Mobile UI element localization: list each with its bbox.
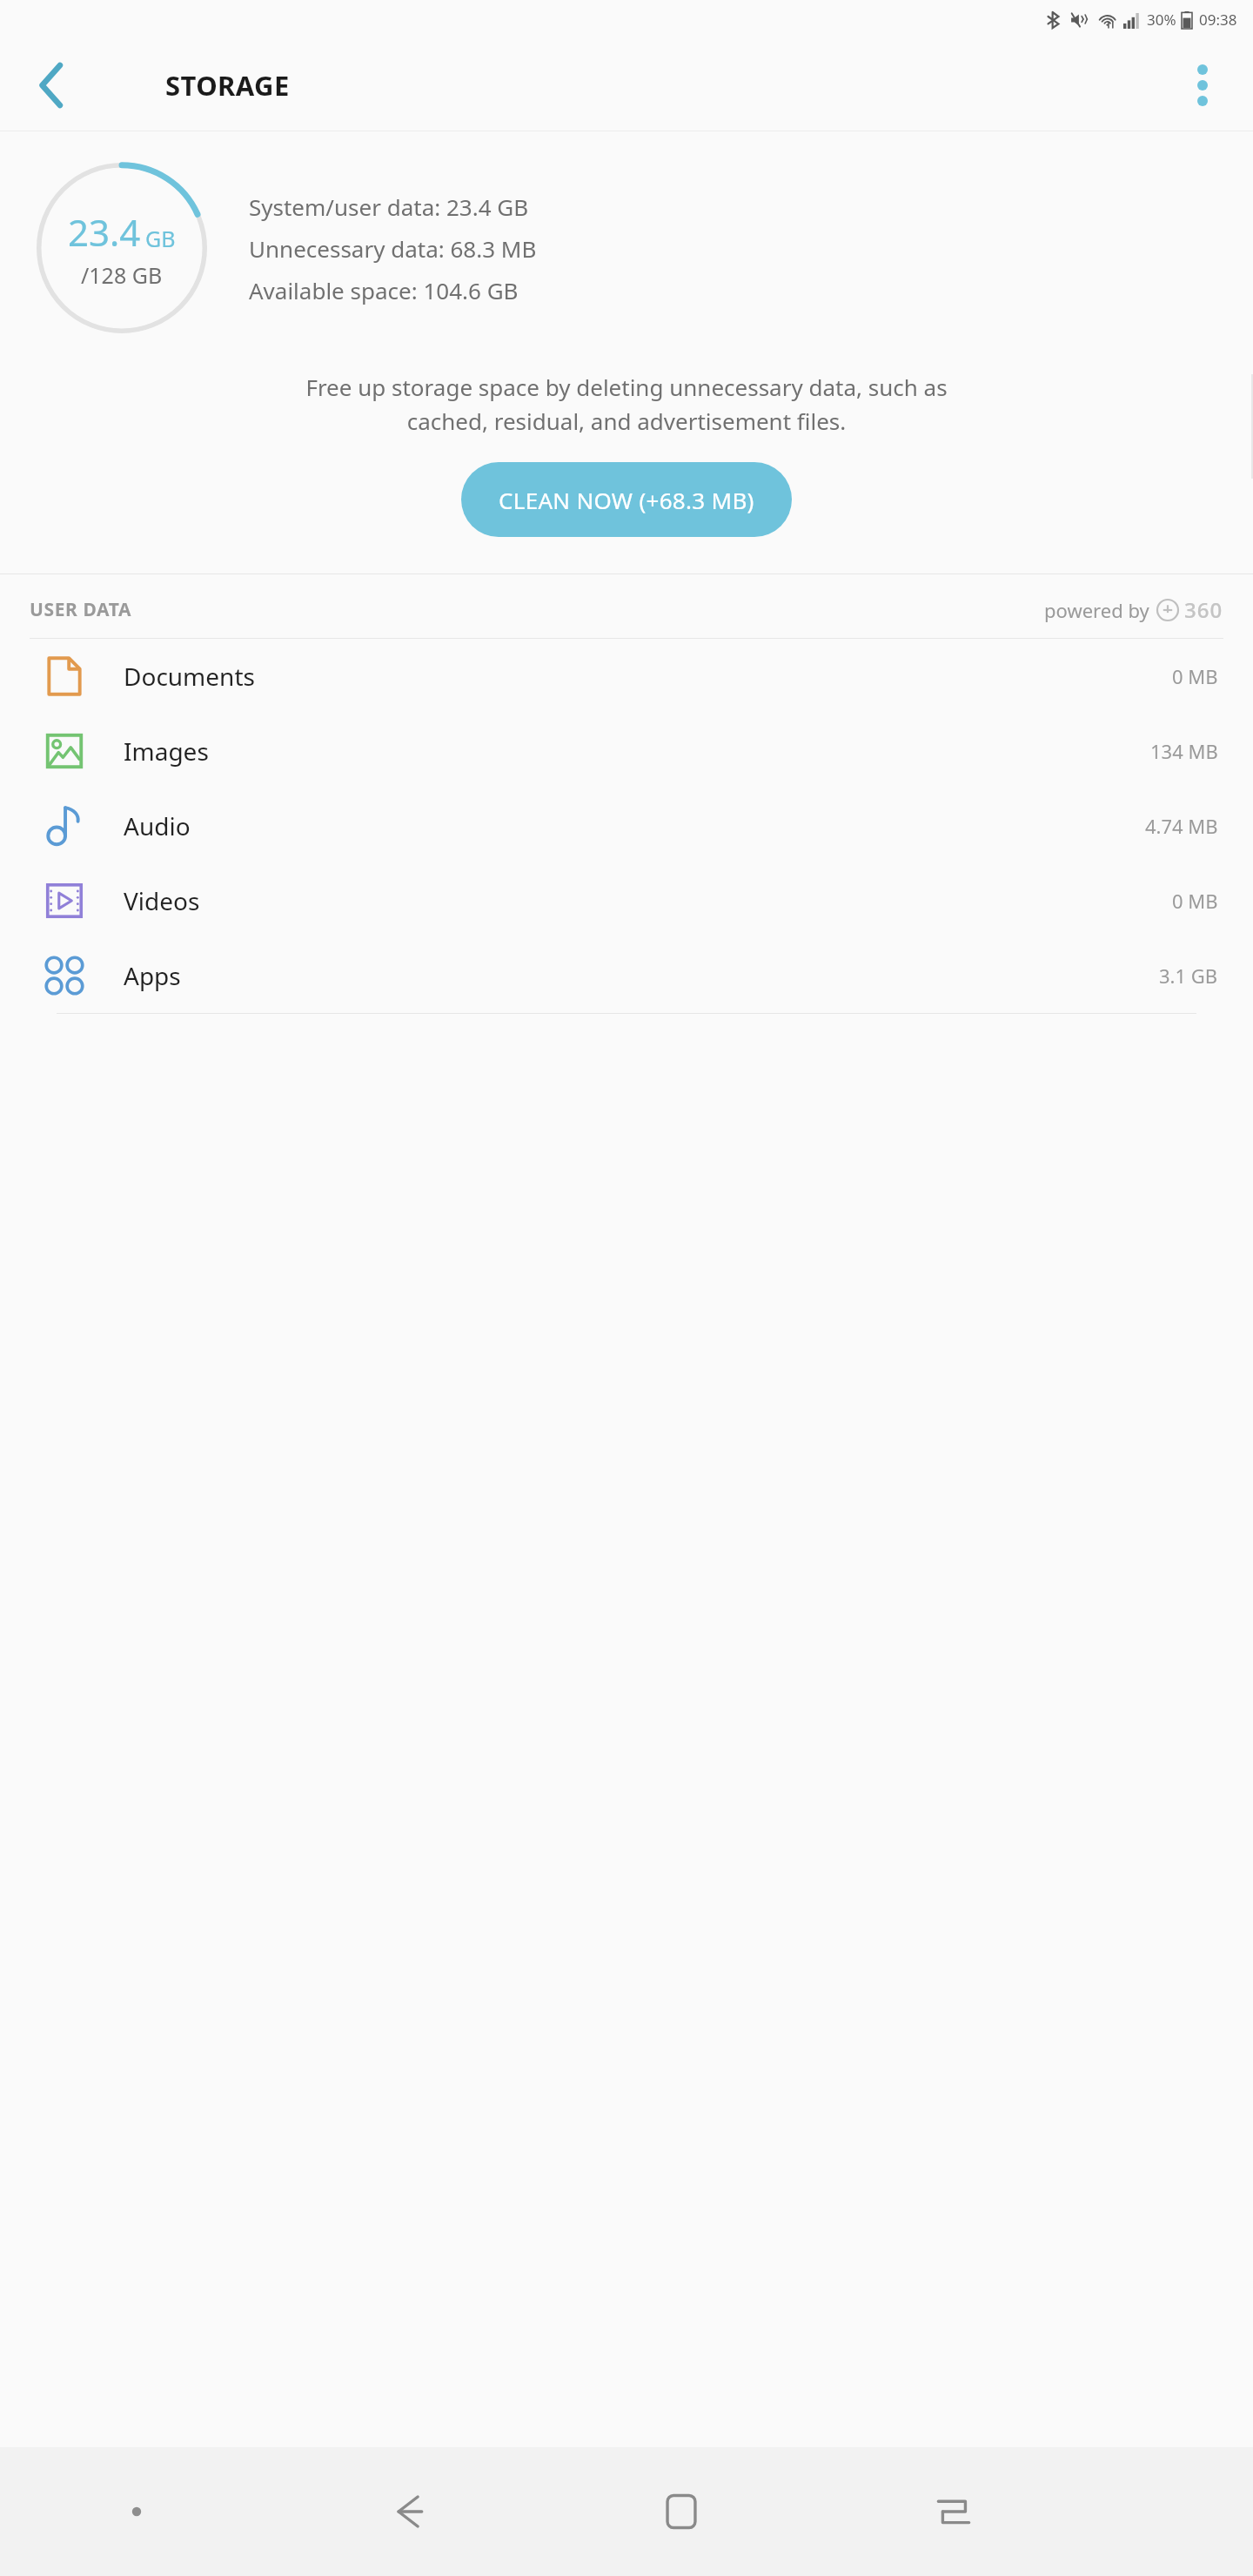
staticText: CLEAN NOW (+68.3 MB) xyxy=(499,485,754,515)
staticText: Documents xyxy=(124,660,255,693)
staticText: GB xyxy=(145,224,176,253)
button[interactable]: Documents xyxy=(0,639,1253,714)
button[interactable]: Audio xyxy=(0,788,1253,863)
button[interactable]: Videos xyxy=(0,863,1253,938)
button[interactable]: Apps xyxy=(0,938,1253,1013)
staticText: Images xyxy=(124,735,209,768)
staticText: Unnecessary data: 68.3 MB xyxy=(249,233,537,264)
button[interactable]: Recent apps xyxy=(817,2447,1089,2576)
staticText: Audio xyxy=(124,809,191,842)
staticText: Apps xyxy=(124,959,181,992)
button[interactable]: CLEAN NOW (+68.3 MB) xyxy=(461,462,792,537)
button[interactable]: Images xyxy=(0,714,1253,788)
staticText: 4.74 MB xyxy=(1145,813,1218,839)
staticText: 23.4 xyxy=(68,207,141,257)
staticText: 134 MB xyxy=(1150,738,1218,764)
staticText: 0 MB xyxy=(1172,663,1218,689)
staticText: 09:38 xyxy=(1199,10,1237,30)
staticText: USER DATA xyxy=(30,597,132,622)
staticText: System/user data: 23.4 GB xyxy=(249,191,529,222)
staticText: powered by xyxy=(1044,597,1149,623)
staticText: Available space: 104.6 GB xyxy=(249,275,519,305)
staticText: 3.1 GB xyxy=(1159,963,1218,989)
staticText: 360 xyxy=(1184,595,1223,624)
staticText: Free up storage space by deleting unnece… xyxy=(42,372,1211,436)
staticText: 0 MB xyxy=(1172,888,1218,914)
button[interactable]: Back xyxy=(19,52,85,118)
staticText: Videos xyxy=(124,884,200,917)
staticText: 30% xyxy=(1147,10,1176,30)
staticText: /128 GB xyxy=(81,260,163,290)
staticText: STORAGE xyxy=(165,67,290,104)
button[interactable]: Back xyxy=(272,2447,545,2576)
button[interactable]: Home xyxy=(545,2447,817,2576)
button[interactable]: More options xyxy=(1169,52,1236,118)
